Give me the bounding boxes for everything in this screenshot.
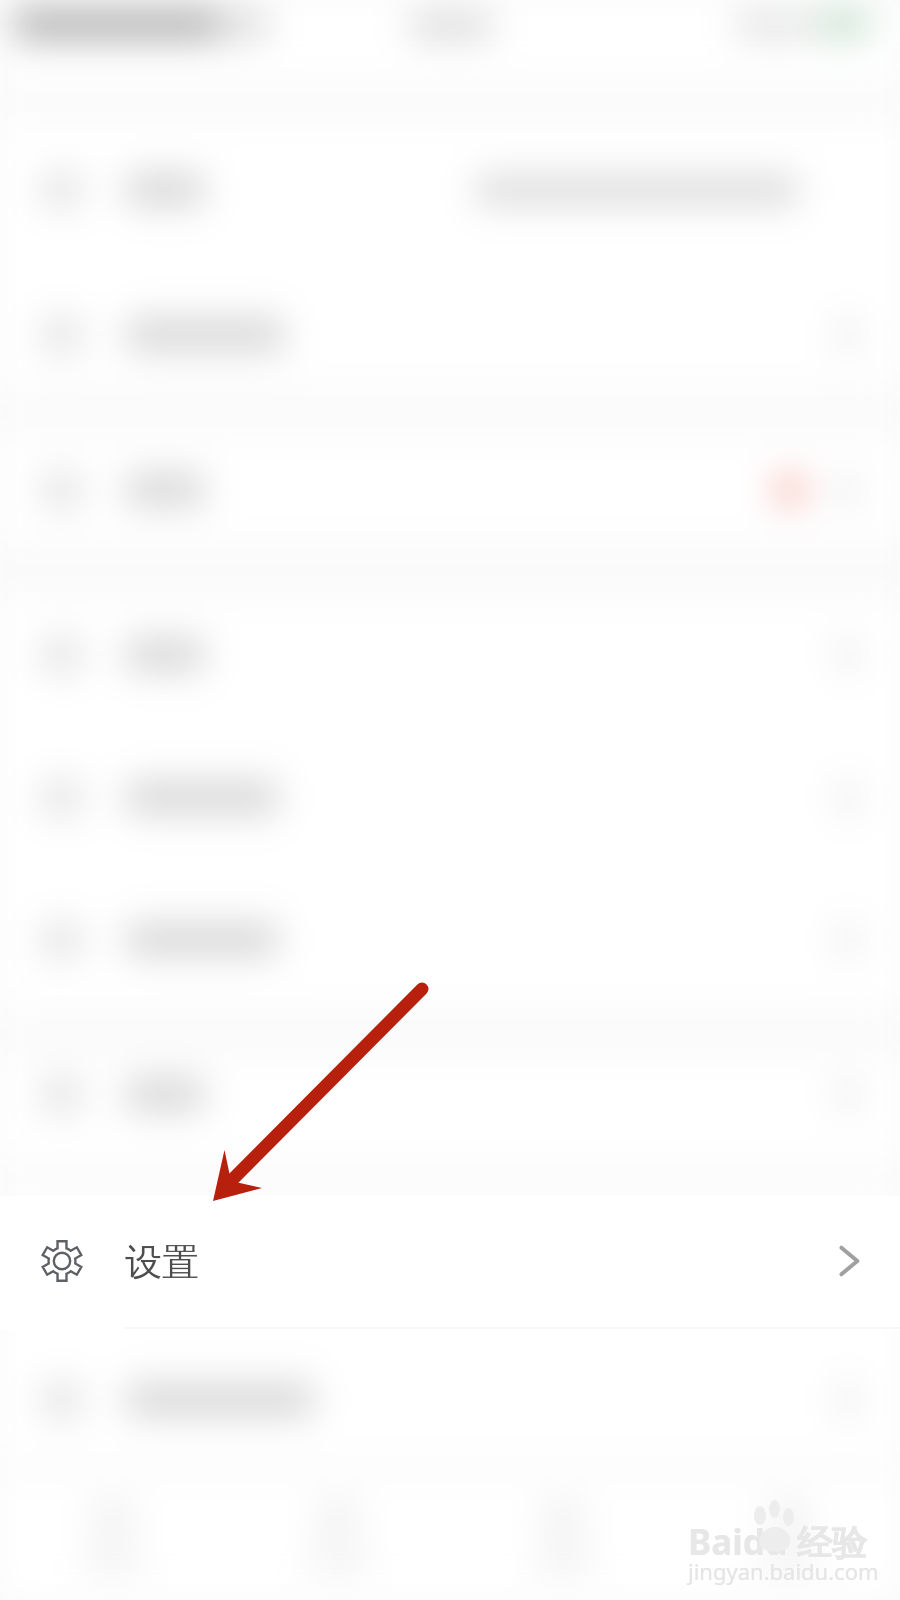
button[interactable]: 关于与反馈 xyxy=(0,1332,900,1460)
button[interactable]: 浏览历史 xyxy=(0,728,900,869)
button[interactable]: 消息通知 xyxy=(0,438,900,541)
staticText: jingyan.baidu.com xyxy=(688,1556,879,1586)
staticText: 设置 xyxy=(125,1239,199,1286)
button[interactable]: 我的订单 xyxy=(0,264,900,385)
button[interactable]: 账号信息 xyxy=(0,122,900,262)
button[interactable]: 我的钱包 xyxy=(0,871,900,1010)
button[interactable]: 帮助 xyxy=(0,1058,900,1162)
staticText: Baidu 经验 xyxy=(688,1518,867,1566)
button[interactable]: 我的 xyxy=(675,1478,900,1600)
button[interactable]: 设置 xyxy=(0,1196,900,1330)
button[interactable]: 收藏 xyxy=(0,600,900,728)
